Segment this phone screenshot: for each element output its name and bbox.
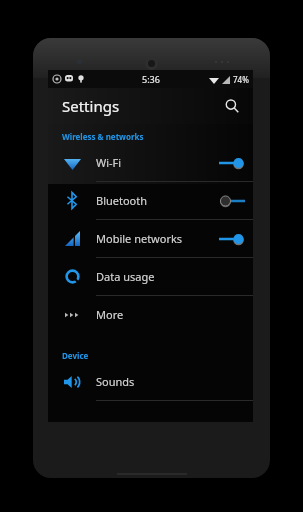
staticText: More xyxy=(96,307,243,322)
staticText: Wi-Fi xyxy=(96,155,211,170)
button[interactable]: More xyxy=(48,296,253,333)
staticText: 74% xyxy=(233,74,249,85)
button[interactable]: Data usage xyxy=(48,258,253,295)
staticText: Mobile networks xyxy=(96,231,211,246)
staticText: Device xyxy=(62,350,89,361)
button[interactable]: Mobile networks toggle xyxy=(211,220,253,257)
button[interactable]: Wi-Fi toggle xyxy=(211,144,253,181)
button[interactable]: Bluetooth toggle xyxy=(211,182,253,219)
button[interactable]: Sounds xyxy=(48,363,253,400)
staticText: 5:36 xyxy=(142,73,160,85)
button[interactable]: Search xyxy=(217,91,247,121)
staticText: Settings xyxy=(62,96,120,116)
staticText: Wireless & networks xyxy=(62,131,144,142)
staticText: Bluetooth xyxy=(96,193,211,208)
button[interactable]: Mobile networks xyxy=(48,220,253,257)
button[interactable]: Wi-Fi xyxy=(48,144,253,181)
staticText: Sounds xyxy=(96,374,243,389)
button[interactable]: Bluetooth xyxy=(48,182,253,219)
staticText: Data usage xyxy=(96,269,243,284)
